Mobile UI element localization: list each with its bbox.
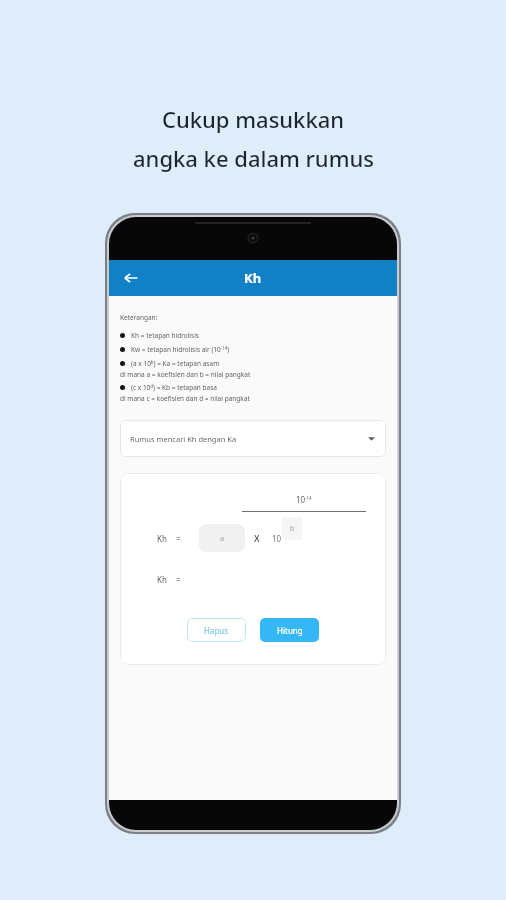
button[interactable]: Hapus [187, 618, 246, 642]
staticText: di mana a = koefisien dan b = nilai pang… [120, 370, 251, 379]
staticText: b [290, 524, 295, 534]
staticText: Kh [157, 533, 167, 544]
staticText: = [176, 574, 181, 585]
staticText: X [254, 532, 260, 544]
button[interactable]: a [199, 524, 245, 552]
staticText: angka ke dalam rumus [133, 143, 374, 173]
staticText: Kh = tetapan hidrolisis [131, 331, 199, 340]
staticText: a [220, 533, 225, 543]
staticText: (a x 10b) = Ka = tetapan asam [131, 359, 220, 368]
staticText: 10 [272, 533, 282, 544]
button[interactable]: Rumus mencari Kh dengan Ka [120, 420, 386, 457]
button[interactable]: Back [118, 265, 144, 291]
staticText: Kw = tetapan hidrolisis air (10-14) [131, 345, 230, 354]
button[interactable]: Hitung [260, 618, 319, 642]
staticText: 10-14 [296, 494, 312, 505]
staticText: Keterangan: [120, 313, 158, 322]
staticText: di mana c = koefisien dan d = nilai pang… [120, 394, 250, 403]
staticText: (c x 10d) = Kb = tetapan basa [131, 383, 217, 392]
staticText: Kh [157, 574, 167, 585]
staticText: = [176, 533, 181, 544]
staticText: Hitung [277, 625, 303, 636]
staticText: Cukup masukkan [162, 104, 345, 134]
staticText: Kh [244, 269, 262, 287]
staticText: Rumus mencari Kh dengan Ka [130, 434, 237, 444]
button[interactable]: b [282, 517, 302, 540]
staticText: Hapus [204, 625, 229, 636]
